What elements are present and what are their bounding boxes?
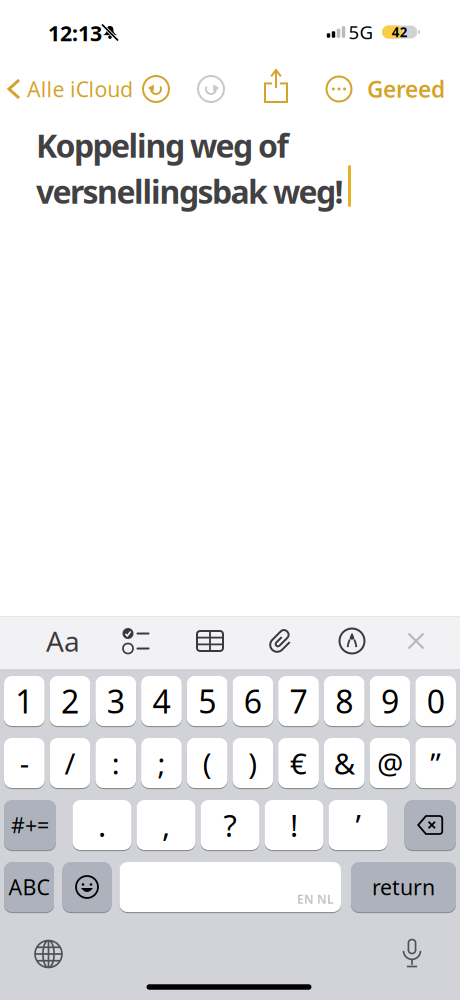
button[interactable]: - (4, 738, 45, 788)
staticText: ; (157, 743, 165, 782)
staticText: return (372, 873, 435, 901)
staticText: 7 (290, 680, 308, 722)
button[interactable]: 9 (370, 676, 410, 726)
staticText: 8 (335, 680, 353, 722)
button[interactable]: Dismiss keyboard (408, 633, 423, 648)
button[interactable]: Markup (339, 628, 364, 653)
staticText: 6 (244, 680, 262, 722)
button[interactable]: Redo (198, 76, 224, 102)
staticText: € (290, 743, 307, 782)
button[interactable]: Format (46, 622, 80, 660)
button[interactable]: Gereed (367, 74, 445, 104)
button[interactable]: , (136, 800, 195, 850)
staticText: : (112, 743, 120, 782)
button[interactable]: Emoji (62, 862, 111, 912)
button[interactable]: 8 (324, 676, 365, 726)
button[interactable]: € (278, 738, 319, 788)
button[interactable]: #+= (4, 800, 56, 850)
button[interactable]: Checklist (122, 629, 150, 653)
button[interactable]: ( (187, 738, 227, 788)
staticText: ? (223, 805, 236, 845)
staticText: 3 (107, 680, 125, 722)
staticText: EN NL (297, 891, 334, 907)
staticText: Gereed (367, 74, 445, 104)
button[interactable]: 5 (187, 676, 227, 726)
staticText: @ (377, 743, 403, 782)
staticText: ” (430, 743, 441, 782)
button[interactable]: Undo (143, 76, 169, 102)
staticText: ( (203, 743, 212, 782)
button[interactable]: Next keyboard (35, 940, 62, 967)
staticText: 1 (15, 680, 33, 722)
button[interactable]: 6 (232, 676, 273, 726)
staticText: 4 (152, 680, 170, 722)
button[interactable]: Table (197, 631, 223, 651)
staticText: 9 (381, 680, 399, 722)
staticText: versnellingsbak weg! (36, 170, 343, 212)
button[interactable]: 1 (4, 676, 45, 726)
button[interactable]: Dictate (403, 939, 420, 966)
button[interactable]: . (72, 800, 131, 850)
staticText: / (65, 743, 76, 782)
button[interactable]: Delete (404, 800, 456, 850)
button[interactable]: 2 (50, 676, 90, 726)
staticText: 2 (61, 680, 79, 722)
button[interactable]: 3 (95, 676, 136, 726)
staticText: , (162, 805, 170, 845)
staticText: ) (248, 743, 257, 782)
staticText: ! (290, 805, 298, 845)
staticText: Alle iCloud (27, 75, 133, 103)
staticText: Aa (46, 622, 80, 660)
staticText: 42 (392, 23, 408, 41)
button[interactable]: return (351, 862, 456, 912)
button[interactable]: 4 (141, 676, 182, 726)
button[interactable]: : (95, 738, 136, 788)
staticText: Koppeling weg of (36, 124, 288, 166)
staticText: #+= (11, 811, 49, 839)
staticText: 5G (348, 20, 373, 44)
button[interactable]: 0 (415, 676, 456, 726)
button[interactable]: Attach (273, 628, 288, 654)
button[interactable]: 7 (278, 676, 319, 726)
button[interactable]: Share (265, 70, 287, 102)
staticText: ’ (355, 805, 360, 845)
staticText: ABC (8, 873, 49, 901)
staticText: & (334, 743, 355, 782)
button[interactable]: / (50, 738, 90, 788)
button[interactable]: & (324, 738, 365, 788)
button[interactable]: Alle iCloud (9, 75, 133, 103)
button[interactable]: ) (232, 738, 273, 788)
button[interactable]: ? (200, 800, 259, 850)
staticText: 5 (198, 680, 216, 722)
button[interactable]: Space (119, 862, 341, 912)
button[interactable]: ” (415, 738, 456, 788)
staticText: 0 (427, 680, 445, 722)
button[interactable]: ; (141, 738, 182, 788)
button[interactable]: @ (370, 738, 410, 788)
button[interactable]: ’ (328, 800, 387, 850)
button[interactable]: ABC (4, 862, 54, 912)
staticText: . (98, 805, 106, 845)
button[interactable]: More (326, 76, 351, 101)
staticText: - (20, 743, 29, 782)
staticText: 12:13 (48, 19, 102, 47)
button[interactable]: ! (264, 800, 323, 850)
